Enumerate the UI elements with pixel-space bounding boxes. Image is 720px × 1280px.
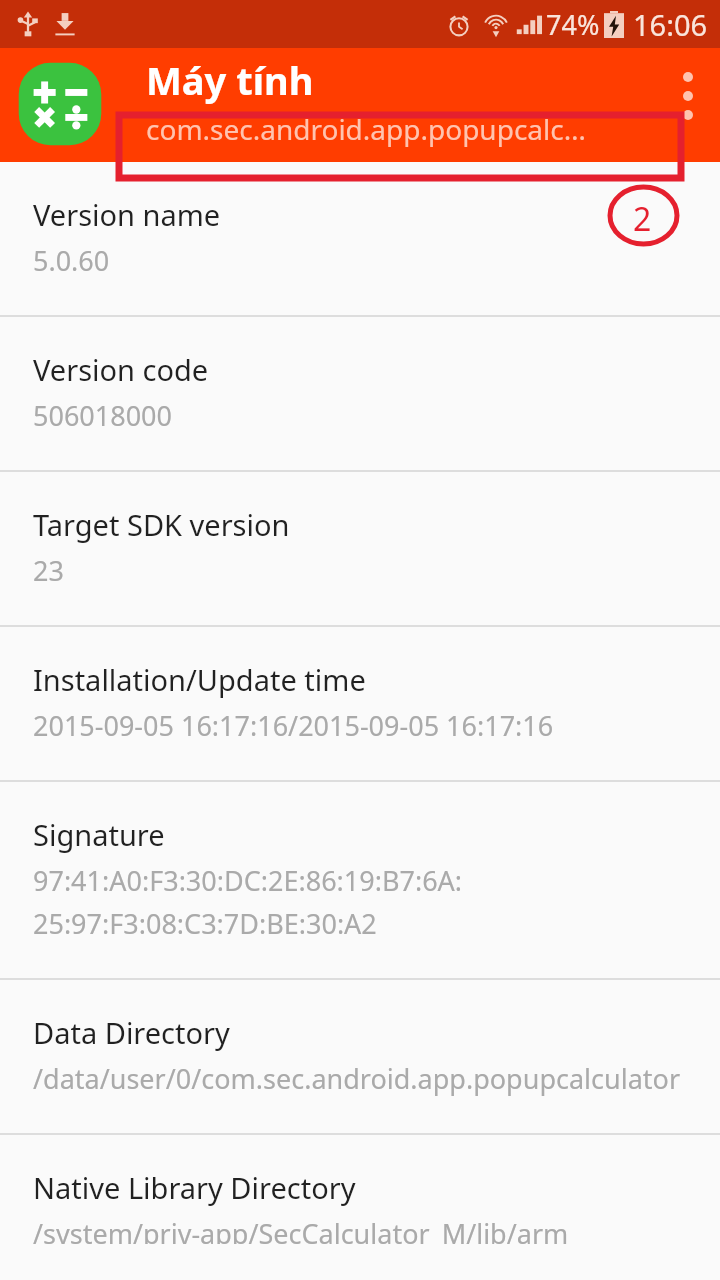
staticText: Máy tính xyxy=(146,54,314,106)
button[interactable]: Version code xyxy=(0,317,720,470)
button[interactable]: App icon xyxy=(12,56,108,152)
button[interactable]: Target SDK version xyxy=(0,472,720,625)
button[interactable]: Signature xyxy=(0,782,720,978)
staticText: 74% xyxy=(546,6,600,43)
staticText: 23 xyxy=(33,552,64,589)
button[interactable]: Native Library Directory xyxy=(0,1135,720,1280)
button[interactable]: Data Directory xyxy=(0,980,720,1133)
staticText: Version name xyxy=(33,195,221,234)
button[interactable]: More options xyxy=(656,48,720,144)
staticText: /system/priv-app/SecCalculator_M/lib/arm xyxy=(33,1215,569,1244)
staticText: 2015-09-05 16:17:16/2015-09-05 16:17:16 xyxy=(33,707,554,744)
staticText: 5.0.60 xyxy=(33,242,110,279)
button[interactable]: Installation/Update time xyxy=(0,627,720,780)
staticText: 16:06 xyxy=(633,5,708,44)
staticText: 2 xyxy=(633,197,652,241)
staticText: 506018000 xyxy=(33,397,172,434)
staticText: Native Library Directory xyxy=(33,1168,356,1207)
staticText: 25:97:F3:08:C3:7D:BE:30:A2 xyxy=(33,905,377,942)
button[interactable]: Version name xyxy=(0,162,720,315)
staticText: Version code xyxy=(33,350,209,389)
staticText: Signature xyxy=(33,815,165,854)
staticText: Data Directory xyxy=(33,1013,230,1052)
staticText: com.sec.android.app.popupcalc… xyxy=(146,110,586,148)
staticText: Target SDK version xyxy=(33,505,290,544)
staticText: Installation/Update time xyxy=(33,660,366,699)
staticText: 97:41:A0:F3:30:DC:2E:86:19:B7:6A: xyxy=(33,862,463,899)
staticText: /data/user/0/com.sec.android.app.popupca… xyxy=(33,1060,681,1097)
